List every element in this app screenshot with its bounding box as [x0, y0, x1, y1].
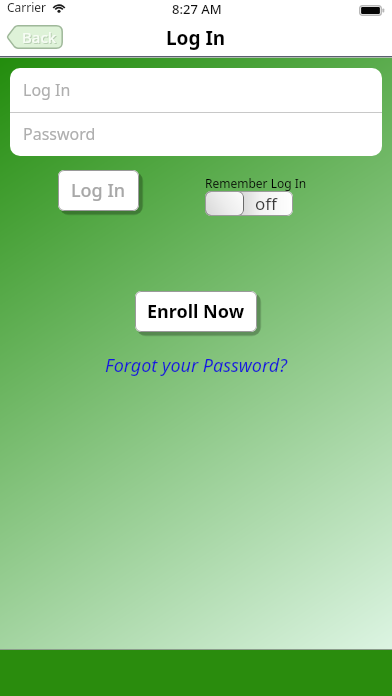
staticText: Back: [23, 28, 58, 48]
staticText: 8:27 AM: [172, 0, 222, 18]
button[interactable]: Log In: [58, 170, 139, 211]
button[interactable]: Enroll Now: [135, 291, 257, 332]
staticText: Remember Log In: [205, 175, 307, 191]
button[interactable]: Remember Log In toggle: [205, 191, 293, 216]
staticText: Log In: [23, 79, 71, 101]
button[interactable]: Back: [6, 25, 63, 49]
staticText: Enroll Now: [147, 299, 245, 324]
staticText: Back: [22, 27, 57, 47]
button[interactable]: Forgot your Password?: [0, 353, 392, 378]
staticText: Log In: [71, 178, 126, 203]
staticText: off: [255, 192, 277, 215]
staticText: Carrier: [7, 0, 47, 15]
staticText: Log In: [166, 25, 226, 51]
staticText: Password: [23, 123, 96, 145]
